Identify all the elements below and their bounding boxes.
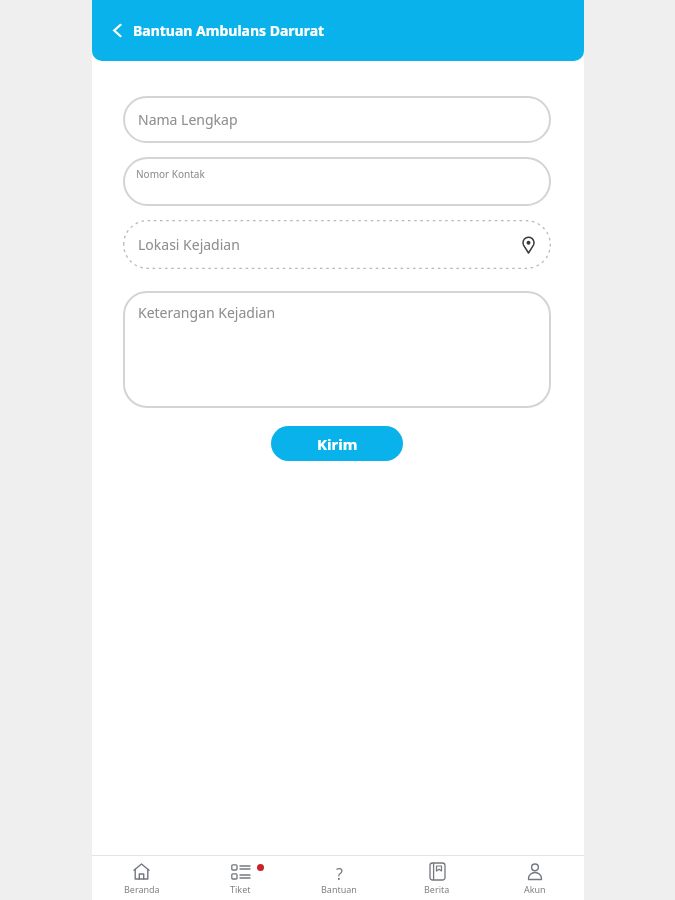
staticText: ? [336, 863, 343, 880]
staticText: Akun [524, 883, 546, 895]
button[interactable]: Beranda [92, 856, 191, 900]
staticText: Nomor Kontak [136, 167, 205, 181]
staticText: Beranda [124, 883, 160, 895]
button[interactable]: Berita [388, 856, 486, 900]
staticText: Bantuan Ambulans Darurat [133, 21, 325, 40]
button[interactable]: Kirim [271, 426, 403, 461]
staticText: Tiket [230, 883, 251, 895]
button[interactable]: Nomor Kontak [123, 157, 551, 206]
button[interactable] [112, 24, 123, 37]
staticText: Kirim [317, 434, 358, 454]
staticText: Lokasi Kejadian [138, 235, 240, 254]
button[interactable]: Tiket [191, 856, 290, 900]
staticText: Nama Lengkap [138, 110, 238, 129]
staticText: Berita [424, 883, 450, 895]
button[interactable]: Nama Lengkap [123, 96, 551, 143]
staticText: Bantuan [321, 883, 357, 895]
button[interactable]: Akun [486, 856, 584, 900]
staticText: Keterangan Kejadian [138, 303, 276, 322]
button[interactable]: ? [290, 856, 388, 900]
button[interactable]: Keterangan Kejadian [123, 291, 551, 408]
button[interactable]: Lokasi Kejadian [123, 220, 551, 269]
